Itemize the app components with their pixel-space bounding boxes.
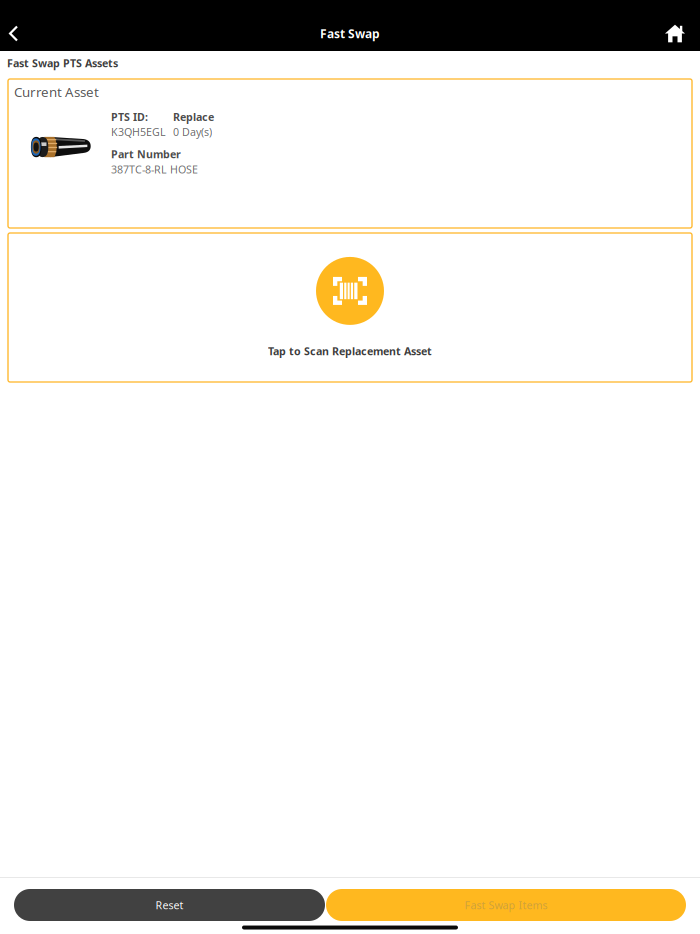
staticText: 387TC-8-RL HOSE [111, 162, 198, 176]
staticText: Fast Swap Items [464, 898, 547, 912]
button[interactable]: Reset [14, 889, 325, 921]
staticText: 0 Day(s) [173, 125, 212, 139]
button[interactable]: Home [648, 16, 700, 51]
staticText: Reset [155, 898, 183, 912]
staticText: Current Asset [14, 83, 99, 101]
button[interactable]: Tap to Scan Replacement Asset [8, 233, 692, 382]
staticText: K3QH5EGL [111, 125, 166, 139]
staticText: PTS ID: [111, 110, 148, 124]
button[interactable]: Fast Swap Items [326, 889, 686, 921]
staticText: Fast Swap PTS Assets [7, 56, 118, 70]
staticText: Replace [173, 110, 214, 124]
staticText: Part Number [111, 147, 181, 161]
staticText: Tap to Scan Replacement Asset [268, 344, 432, 358]
button[interactable]: Back [0, 16, 52, 51]
staticText: Fast Swap [320, 25, 380, 41]
